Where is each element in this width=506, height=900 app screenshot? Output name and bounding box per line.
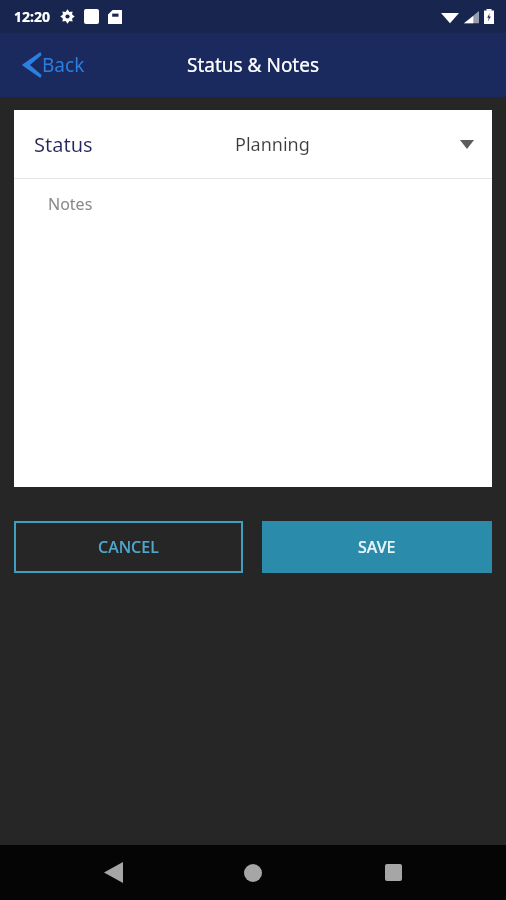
button[interactable]: Back — [18, 46, 89, 84]
staticText: Back — [42, 52, 85, 78]
button[interactable]: Status — [14, 110, 492, 178]
button[interactable]: Back — [43, 845, 183, 900]
other: Back — [22, 52, 42, 78]
button[interactable]: Notes — [14, 179, 492, 487]
staticText: 12:20 — [14, 7, 50, 26]
staticText: CANCEL — [98, 536, 159, 558]
staticText: Notes — [48, 193, 93, 215]
staticText: Status & Notes — [187, 52, 320, 78]
button[interactable]: Home — [183, 845, 323, 900]
button[interactable]: CANCEL — [14, 521, 243, 573]
other: Open status dropdown — [460, 140, 474, 149]
button[interactable]: SAVE — [262, 521, 492, 573]
staticText: Planning — [235, 132, 310, 157]
staticText: Status — [34, 131, 93, 158]
button[interactable]: Recent apps — [323, 845, 463, 900]
staticText: SAVE — [358, 536, 396, 558]
